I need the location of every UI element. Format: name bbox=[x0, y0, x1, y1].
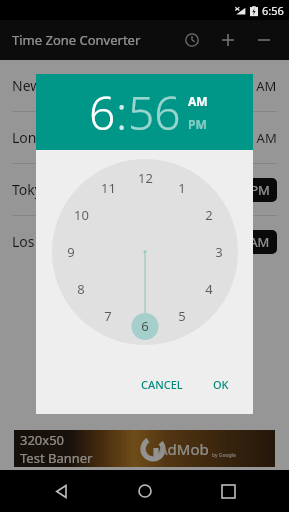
staticText: London bbox=[12, 128, 63, 147]
staticText: 7:56 AM bbox=[227, 77, 277, 95]
staticText: 6:56 bbox=[262, 3, 284, 18]
staticText: : bbox=[116, 81, 128, 144]
button[interactable]: 12 bbox=[133, 166, 157, 190]
staticText: Tokyo bbox=[12, 180, 51, 199]
staticText: 11 bbox=[101, 179, 116, 197]
staticText: 12 bbox=[138, 169, 153, 187]
staticText: 12:56 AM bbox=[220, 129, 277, 147]
staticText: 10 bbox=[74, 206, 89, 224]
button[interactable]: Tokyo bbox=[0, 164, 289, 215]
staticText: 2 bbox=[205, 206, 213, 224]
button[interactable]: New York bbox=[0, 60, 289, 111]
button[interactable]: Remove bbox=[251, 27, 277, 53]
button[interactable]: 320x50 bbox=[14, 430, 275, 467]
staticText: 4:56 AM bbox=[220, 233, 270, 251]
button[interactable]: Set time bbox=[179, 27, 205, 53]
staticText: 3 bbox=[215, 243, 223, 261]
button[interactable]: 7 bbox=[96, 304, 120, 328]
button[interactable]: 2 bbox=[197, 203, 221, 227]
button[interactable]: 6 bbox=[133, 314, 157, 338]
button[interactable]: 3 bbox=[207, 240, 231, 264]
staticText: 6 bbox=[89, 81, 116, 144]
button[interactable]: Back bbox=[39, 470, 83, 512]
staticText: OK bbox=[213, 377, 229, 392]
button[interactable]: 9 bbox=[59, 240, 83, 264]
button[interactable]: 6 bbox=[89, 81, 116, 144]
button[interactable]: Home bbox=[123, 470, 167, 512]
staticText: 320x50 bbox=[20, 431, 65, 449]
button[interactable]: 1 bbox=[170, 176, 194, 200]
staticText: 9 bbox=[67, 243, 75, 261]
staticText: 8 bbox=[77, 280, 85, 298]
button[interactable]: Los Angeles bbox=[0, 216, 289, 267]
staticText: 6 bbox=[141, 317, 149, 335]
staticText: Los Angeles bbox=[12, 232, 91, 251]
button[interactable]: PM bbox=[188, 116, 207, 132]
button[interactable]: 5 bbox=[170, 304, 194, 328]
button[interactable]: Add bbox=[215, 27, 241, 53]
staticText: 4 bbox=[205, 280, 213, 298]
staticText: Time Zone Converter bbox=[12, 31, 141, 49]
button[interactable]: CANCEL bbox=[133, 371, 191, 398]
staticText: 7 bbox=[104, 307, 112, 325]
button[interactable]: Recent apps bbox=[206, 470, 250, 512]
staticText: 5 bbox=[178, 307, 186, 325]
button[interactable]: OK bbox=[205, 371, 237, 398]
staticText: AM bbox=[188, 93, 208, 109]
button[interactable]: 11 bbox=[96, 176, 120, 200]
staticText: PM bbox=[188, 116, 207, 132]
staticText: 1 bbox=[178, 179, 186, 197]
button[interactable]: 10 bbox=[69, 203, 93, 227]
staticText: Test Banner bbox=[20, 449, 93, 467]
staticText: 56 bbox=[128, 81, 181, 144]
staticText: 8:56 PM bbox=[221, 181, 270, 199]
button[interactable]: 8 bbox=[69, 277, 93, 301]
button[interactable]: 4 bbox=[197, 277, 221, 301]
staticText: New York bbox=[12, 76, 74, 95]
button[interactable]: London bbox=[0, 112, 289, 163]
staticText: CANCEL bbox=[141, 377, 183, 392]
staticText: AdMob bbox=[158, 439, 209, 459]
staticText: by Google bbox=[212, 452, 236, 459]
button[interactable]: 56 bbox=[128, 81, 181, 144]
button[interactable]: AM bbox=[188, 93, 208, 109]
